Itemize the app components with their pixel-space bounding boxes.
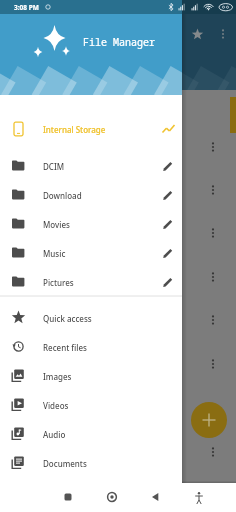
staticText: Videos	[43, 400, 69, 411]
button[interactable]: Quick access	[0, 304, 182, 333]
button[interactable]: DCIM	[0, 152, 182, 181]
staticText: Movies	[43, 219, 70, 230]
button[interactable]	[143, 486, 167, 510]
button[interactable]: Internal Storage	[0, 115, 182, 144]
staticText: 3:08 PM	[14, 3, 39, 12]
button[interactable]: Movies	[0, 210, 182, 239]
button[interactable]: Recent files	[0, 333, 182, 362]
staticText: File Manager	[83, 35, 155, 49]
staticText: Images	[43, 371, 72, 382]
staticText: DCIM	[43, 161, 65, 172]
staticText: Audio	[43, 429, 66, 440]
button[interactable]	[191, 402, 227, 438]
button[interactable]: Documents	[0, 449, 182, 478]
button[interactable]: Download	[0, 181, 182, 210]
staticText: Quick access	[43, 313, 92, 324]
button[interactable]: Images	[0, 362, 182, 391]
staticText: Pictures	[43, 277, 74, 288]
button[interactable]	[56, 486, 80, 510]
button[interactable]: Pictures	[0, 268, 182, 297]
staticText: Music	[43, 248, 66, 259]
staticText: Documents	[43, 458, 87, 469]
staticText: Download	[43, 190, 82, 201]
button[interactable]	[100, 486, 124, 510]
staticText: Internal Storage	[43, 124, 106, 135]
button[interactable]	[187, 486, 211, 510]
button[interactable]: Videos	[0, 391, 182, 420]
staticText: Recent files	[43, 342, 87, 353]
button[interactable]: Music	[0, 239, 182, 268]
button[interactable]: Audio	[0, 420, 182, 449]
